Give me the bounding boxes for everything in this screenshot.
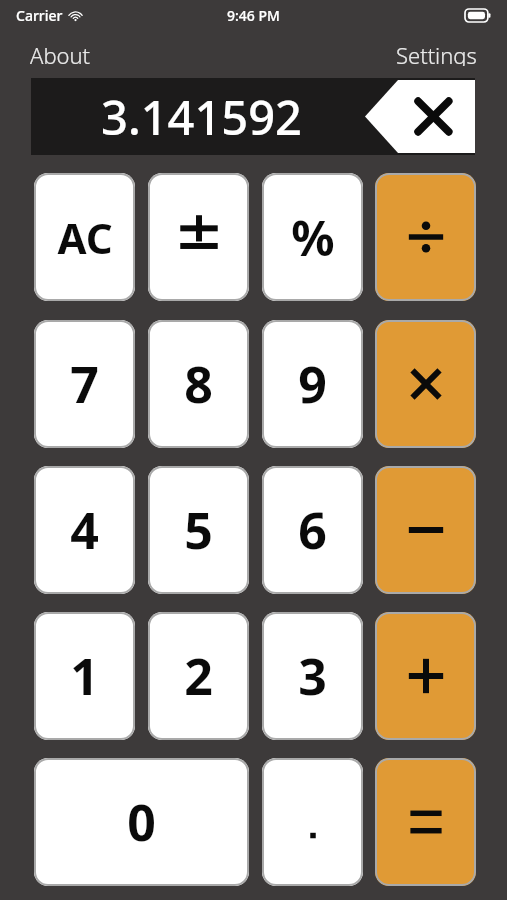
button[interactable]: Delete	[365, 80, 475, 153]
staticText: 9:46 PM	[227, 6, 280, 25]
staticText: Settings	[396, 40, 477, 66]
button[interactable]: 6	[262, 466, 363, 594]
staticText: 3.141592	[101, 85, 302, 149]
staticText: 5	[184, 496, 213, 564]
staticText: About	[30, 40, 91, 66]
staticText: 8	[184, 350, 213, 418]
button[interactable]: AC	[34, 173, 135, 301]
staticText: Carrier	[16, 6, 63, 25]
staticText: 0	[127, 788, 156, 856]
button[interactable]: 0	[34, 758, 249, 886]
staticText: 2	[184, 642, 213, 710]
button[interactable]: 7	[34, 320, 135, 448]
staticText: AC	[57, 209, 113, 266]
staticText: 9	[298, 350, 327, 418]
button[interactable]: Minus	[375, 466, 476, 594]
staticText: 6	[298, 496, 327, 564]
button[interactable]: Plus	[375, 612, 476, 740]
button[interactable]: Divide	[375, 173, 476, 301]
button[interactable]: Equals	[375, 758, 476, 886]
staticText: 1	[70, 642, 99, 710]
button[interactable]: About	[0, 34, 121, 72]
button[interactable]: 1	[34, 612, 135, 740]
button[interactable]: 5	[148, 466, 249, 594]
staticText: %	[291, 205, 335, 270]
staticText: 3	[298, 642, 327, 710]
button[interactable]: Multiply	[375, 320, 476, 448]
button[interactable]: 9	[262, 320, 363, 448]
button[interactable]: %	[262, 173, 363, 301]
button[interactable]: Decimal point	[262, 758, 363, 886]
staticText: 4	[70, 496, 99, 564]
staticText: 7	[70, 350, 99, 418]
button[interactable]: 2	[148, 612, 249, 740]
button[interactable]: 4	[34, 466, 135, 594]
button[interactable]: 8	[148, 320, 249, 448]
button[interactable]: Settings	[366, 34, 507, 72]
button[interactable]: Plus minus	[148, 173, 249, 301]
button[interactable]: 3	[262, 612, 363, 740]
